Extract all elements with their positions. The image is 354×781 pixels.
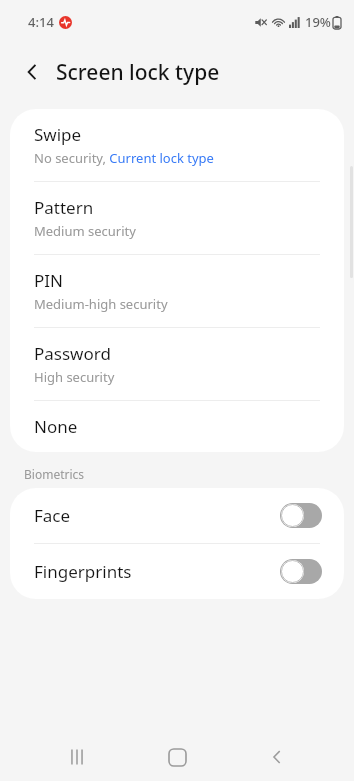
staticText: Biometrics xyxy=(24,466,85,482)
staticText: Face xyxy=(34,504,280,527)
button[interactable]: Back xyxy=(14,54,50,90)
button[interactable]: Password xyxy=(10,328,344,400)
staticText: None xyxy=(34,415,78,438)
button[interactable]: PIN xyxy=(10,255,344,327)
staticText: Swipe xyxy=(34,123,82,146)
staticText: Pattern xyxy=(34,196,94,219)
staticText: Screen lock type xyxy=(56,58,220,87)
staticText: Password xyxy=(34,342,111,365)
staticText: 4:14 xyxy=(28,13,54,31)
staticText: 19% xyxy=(305,13,331,31)
button[interactable]: Home xyxy=(154,734,200,780)
staticText: Fingerprints xyxy=(34,560,280,583)
button[interactable]: Face xyxy=(10,488,344,543)
button[interactable]: Swipe xyxy=(10,109,344,181)
staticText: PIN xyxy=(34,269,63,292)
staticText: Medium-high security xyxy=(34,295,168,313)
staticText: High security xyxy=(34,368,115,386)
button[interactable]: Recents xyxy=(54,734,100,780)
staticText: Medium security xyxy=(34,222,136,240)
staticText: No security, Current lock type xyxy=(34,149,214,167)
button[interactable]: Fingerprints xyxy=(10,544,344,599)
button[interactable]: Back xyxy=(254,734,300,780)
button[interactable]: Pattern xyxy=(10,182,344,254)
button[interactable]: None xyxy=(10,401,344,452)
